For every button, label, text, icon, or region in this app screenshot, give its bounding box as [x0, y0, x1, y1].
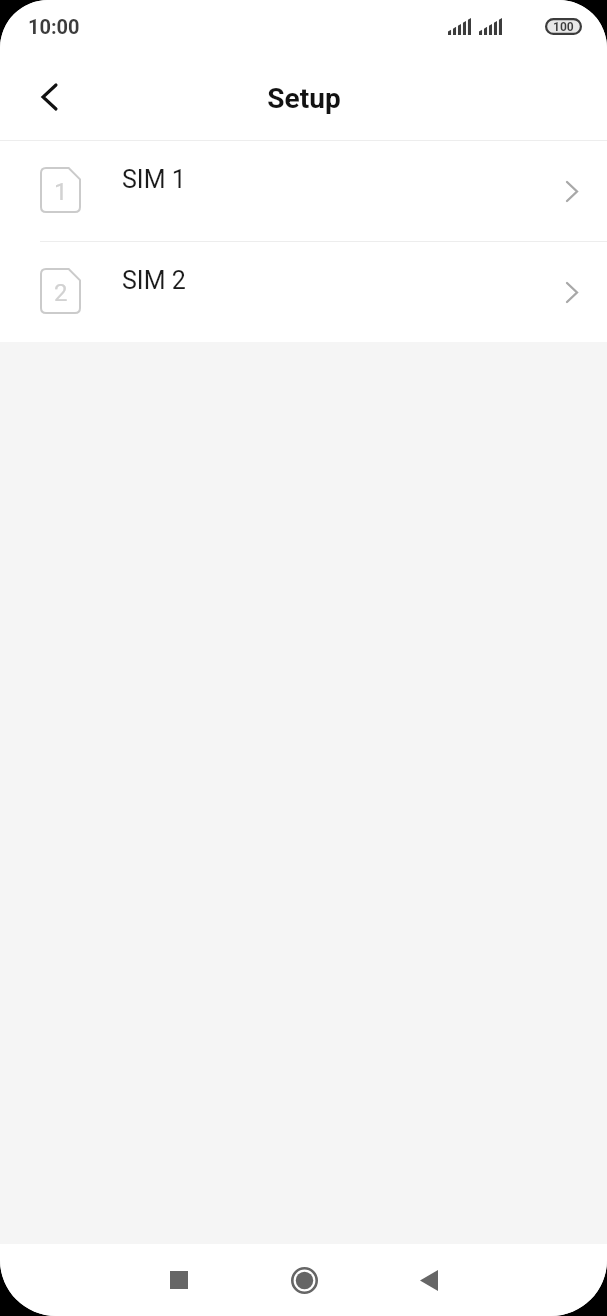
- staticText: SIM 2: [122, 266, 186, 295]
- button[interactable]: Home: [278, 1254, 330, 1306]
- staticText: 2: [54, 279, 68, 307]
- button[interactable]: 2: [0, 242, 607, 342]
- staticText: Setup: [267, 82, 341, 115]
- button[interactable]: 1: [0, 141, 607, 241]
- staticText: 10:00: [28, 15, 80, 38]
- button[interactable]: Back: [23, 71, 75, 123]
- staticText: 1: [54, 178, 68, 206]
- staticText: SIM 1: [122, 165, 186, 194]
- button[interactable]: Back: [402, 1254, 454, 1306]
- button[interactable]: Recents: [153, 1254, 205, 1306]
- staticText: 100: [553, 20, 574, 34]
